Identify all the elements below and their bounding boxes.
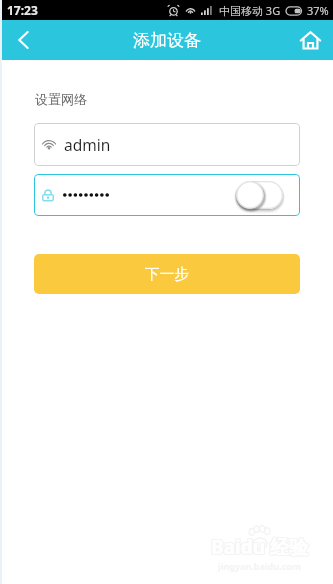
staticText: jingyan.baidu.com [218, 560, 301, 572]
button[interactable]: Back [0, 20, 46, 60]
button[interactable]: Show password [236, 181, 283, 209]
staticText: admin [64, 134, 111, 155]
staticText: Baidu 经验 [211, 533, 308, 559]
button[interactable]: 下一步 [34, 254, 300, 294]
button[interactable]: Home [287, 20, 333, 60]
staticText: 下一步 [145, 265, 190, 284]
staticText: Baidu 经验 [211, 535, 308, 561]
staticText: 37% [307, 3, 329, 18]
staticText: Baidu 经验 [210, 533, 307, 559]
button[interactable] [34, 174, 236, 216]
staticText: 设置网络 [35, 91, 87, 107]
staticText: Baidu 经验 [212, 533, 309, 559]
staticText: Baidu 经验 [211, 534, 308, 560]
staticText: Baidu 经验 [210, 534, 307, 560]
button[interactable]: admin [34, 123, 300, 166]
staticText: 添加设备 [133, 30, 201, 51]
staticText: Baidu 经验 [210, 535, 307, 561]
staticText: 中国移动 3G [219, 3, 281, 18]
staticText: 17:23 [7, 2, 38, 18]
staticText: Baidu 经验 [212, 534, 309, 560]
staticText: Baidu 经验 [212, 535, 309, 561]
